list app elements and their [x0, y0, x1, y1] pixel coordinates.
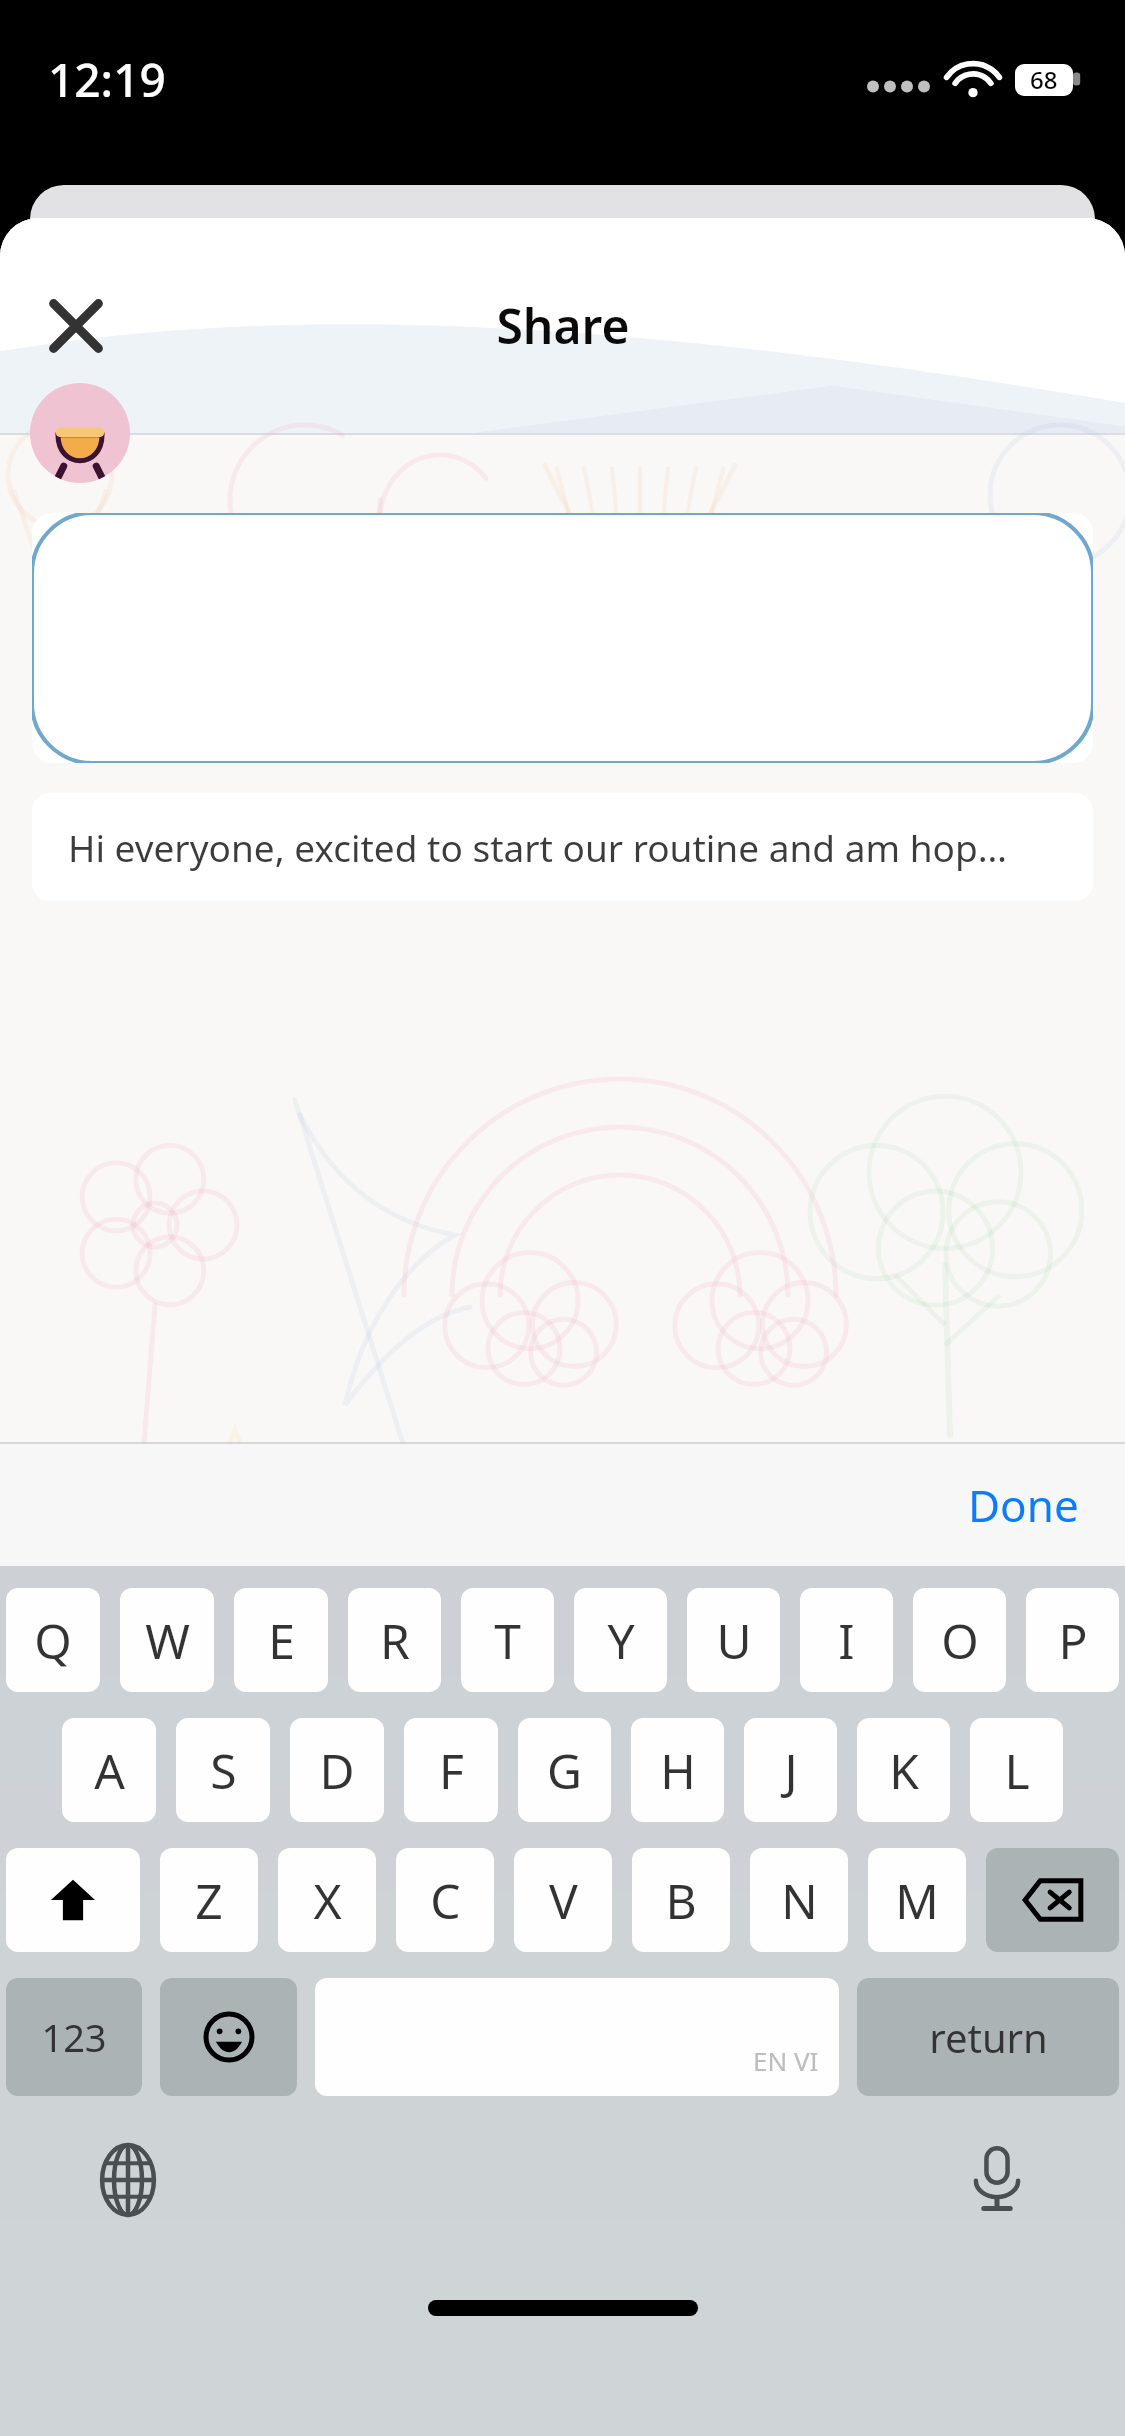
button[interactable]: return: [857, 1978, 1119, 2096]
button[interactable]: 123: [6, 1978, 142, 2096]
button[interactable]: K: [857, 1718, 950, 1822]
staticText: O: [941, 1608, 979, 1673]
staticText: B: [665, 1868, 697, 1933]
staticText: Done: [968, 1475, 1079, 1535]
button[interactable]: R: [348, 1588, 441, 1692]
button[interactable]: Z: [160, 1848, 258, 1952]
staticText: J: [784, 1738, 798, 1803]
button[interactable]: Emoji: [160, 1978, 297, 2096]
button[interactable]: C: [396, 1848, 494, 1952]
button[interactable]: space: [315, 1978, 839, 2096]
button[interactable]: W: [120, 1588, 214, 1692]
staticText: R: [380, 1608, 410, 1673]
staticText: return: [929, 2010, 1048, 2064]
staticText: 68: [1030, 63, 1058, 96]
staticText: 123: [41, 2011, 107, 2063]
staticText: U: [716, 1608, 752, 1673]
staticText: N: [781, 1868, 818, 1933]
staticText: A: [94, 1738, 125, 1803]
button[interactable]: Close: [28, 278, 124, 374]
staticText: Z: [195, 1868, 223, 1933]
button[interactable]: Change keyboard: [78, 2130, 178, 2230]
staticText: EN VI: [753, 2043, 819, 2078]
staticText: I: [838, 1608, 855, 1673]
staticText: S: [210, 1738, 237, 1803]
staticText: L: [1004, 1738, 1030, 1803]
button[interactable]: P: [1026, 1588, 1119, 1692]
staticText: K: [889, 1738, 919, 1803]
staticText: 12:19: [48, 48, 166, 111]
button[interactable]: Shift: [6, 1848, 140, 1952]
button[interactable]: B: [632, 1848, 730, 1952]
button[interactable]: I: [800, 1588, 893, 1692]
button[interactable]: Dictate: [947, 2130, 1047, 2230]
staticText: W: [145, 1608, 190, 1673]
staticText: C: [430, 1868, 461, 1933]
button[interactable]: Q: [6, 1588, 100, 1692]
button[interactable]: X: [278, 1848, 376, 1952]
button[interactable]: V: [514, 1848, 612, 1952]
staticText: D: [319, 1738, 355, 1803]
button[interactable]: E: [234, 1588, 328, 1692]
button[interactable]: Done: [942, 1459, 1105, 1551]
button[interactable]: F: [404, 1718, 498, 1822]
button[interactable]: D: [290, 1718, 384, 1822]
staticText: F: [439, 1738, 464, 1803]
button[interactable]: Hi everyone, excited to start our routin…: [32, 793, 1093, 901]
staticText: Y: [607, 1608, 635, 1673]
button[interactable]: G: [518, 1718, 611, 1822]
staticText: P: [1058, 1608, 1088, 1673]
button[interactable]: [32, 513, 1093, 763]
button[interactable]: J: [744, 1718, 837, 1822]
button[interactable]: H: [631, 1718, 724, 1822]
button[interactable]: L: [970, 1718, 1063, 1822]
staticText: H: [660, 1738, 696, 1803]
staticText: G: [547, 1738, 582, 1803]
staticText: X: [313, 1868, 342, 1933]
button[interactable]: S: [176, 1718, 270, 1822]
button[interactable]: N: [750, 1848, 848, 1952]
staticText: M: [895, 1868, 939, 1933]
button[interactable]: U: [687, 1588, 780, 1692]
staticText: Hi everyone, excited to start our routin…: [68, 822, 1007, 872]
button[interactable]: Backspace: [986, 1848, 1119, 1952]
staticText: E: [268, 1608, 295, 1673]
button[interactable]: O: [913, 1588, 1006, 1692]
button[interactable]: M: [868, 1848, 966, 1952]
staticText: V: [549, 1868, 578, 1933]
button[interactable]: A: [62, 1718, 156, 1822]
button[interactable]: T: [461, 1588, 554, 1692]
staticText: T: [494, 1608, 521, 1673]
button[interactable]: Y: [574, 1588, 667, 1692]
staticText: Share: [496, 293, 630, 358]
staticText: Q: [34, 1608, 72, 1673]
